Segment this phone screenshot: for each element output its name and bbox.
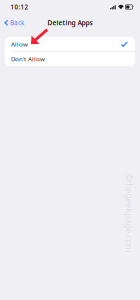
button[interactable]: Allow (5, 37, 135, 51)
staticText: Deleting Apps (47, 18, 92, 27)
staticText: Back (10, 18, 24, 27)
staticText: Don't Allow (11, 55, 45, 63)
button[interactable]: Back (0, 15, 27, 29)
staticText: 10:12 (10, 3, 28, 11)
button[interactable]: Don't Allow (5, 52, 135, 66)
staticText: Allow (11, 40, 28, 48)
